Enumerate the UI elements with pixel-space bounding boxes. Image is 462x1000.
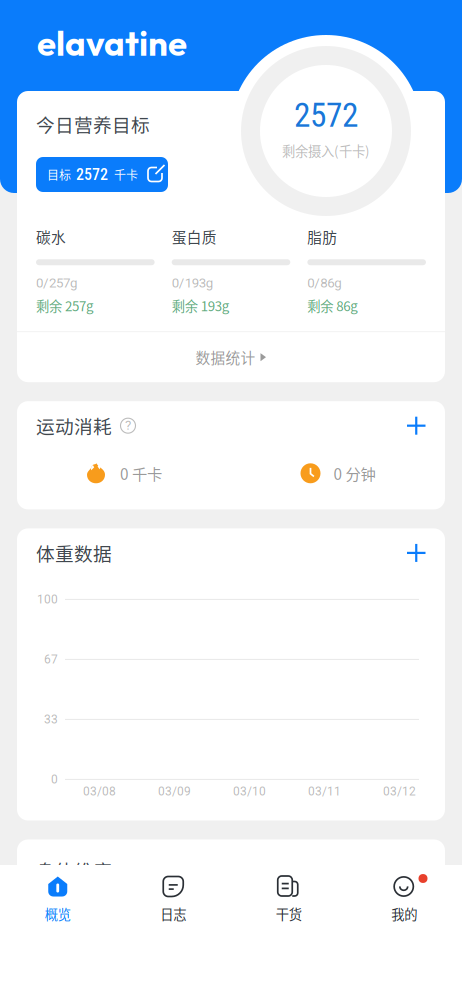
staticText: elavatine <box>37 21 187 65</box>
staticText: 千卡 <box>114 166 138 183</box>
button[interactable]: 概览 <box>0 865 115 1000</box>
staticText: 03/08 <box>83 784 116 798</box>
staticText: 目标 <box>47 166 71 183</box>
staticText: 03/12 <box>383 784 416 798</box>
button[interactable]: Add exercise <box>397 413 426 439</box>
staticText: 蛋白质 <box>172 226 217 247</box>
staticText: 剩余摄入(千卡) <box>282 141 370 160</box>
staticText: 数据统计 <box>195 346 255 368</box>
button[interactable]: 我的 <box>346 865 462 1000</box>
staticText: 0 分钟 <box>333 462 375 484</box>
staticText: 0 <box>51 772 58 786</box>
staticText: 03/11 <box>308 784 341 798</box>
staticText: 0/257g <box>36 275 77 291</box>
staticText: 剩余 193g <box>172 296 230 315</box>
staticText: ? <box>125 417 131 433</box>
staticText: 67 <box>44 652 58 666</box>
staticText: 今日营养目标 <box>36 110 150 137</box>
staticText: 0/193g <box>172 275 213 291</box>
staticText: 身体维度 <box>36 856 112 883</box>
button[interactable]: 干货 <box>231 865 346 1000</box>
staticText: 100 <box>37 592 58 606</box>
button[interactable]: 日志 <box>115 865 231 1000</box>
staticText: 运动消耗 <box>36 412 112 439</box>
staticText: 体重数据 <box>36 539 112 566</box>
staticText: 03/09 <box>158 784 191 798</box>
staticText: 日志 <box>160 904 186 923</box>
staticText: 剩余 257g <box>36 296 94 315</box>
staticText: 33 <box>44 712 58 726</box>
staticText: 我的 <box>391 904 417 923</box>
staticText: 干货 <box>276 904 302 923</box>
staticText: 概览 <box>45 904 71 923</box>
staticText: 03/10 <box>233 784 266 798</box>
staticText: 2572 <box>76 165 108 184</box>
staticText: 剩余 86g <box>307 296 358 315</box>
staticText: 碳水 <box>36 226 66 247</box>
staticText: 0 千卡 <box>120 462 162 484</box>
staticText: 0/86g <box>307 275 341 291</box>
staticText: 2572 <box>294 96 358 135</box>
button[interactable]: 目标 <box>36 157 168 192</box>
button[interactable]: Add weight <box>397 540 426 566</box>
button[interactable]: 数据统计 <box>17 332 445 382</box>
staticText: 脂肪 <box>307 226 337 247</box>
